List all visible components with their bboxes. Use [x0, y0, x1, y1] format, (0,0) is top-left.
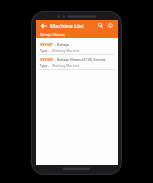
staticText: Type - [40, 48, 50, 52]
staticText: - Bahaja Vikamu(1100_Ecomit-slsrlo/Swd1B [55, 57, 114, 62]
staticText: - Bahaja Vikamu(100_6_lavvlo-1616_Snd_Bt [55, 42, 114, 47]
staticText: Washing Machine [52, 48, 80, 52]
staticText: Type - [40, 63, 50, 67]
staticText: VSV049 [40, 57, 53, 62]
staticText: VSV047 [40, 42, 53, 47]
button[interactable]: Refresh [106, 21, 115, 30]
staticText: Bahaja Vikamu [40, 32, 66, 37]
staticText: Washing Machine [52, 63, 80, 67]
button[interactable]: VSV047 [36, 40, 118, 54]
button[interactable]: VSV049 [36, 55, 118, 69]
button[interactable]: Search [96, 21, 105, 30]
button[interactable]: Back [39, 21, 48, 30]
staticText: Machine List [50, 22, 84, 30]
